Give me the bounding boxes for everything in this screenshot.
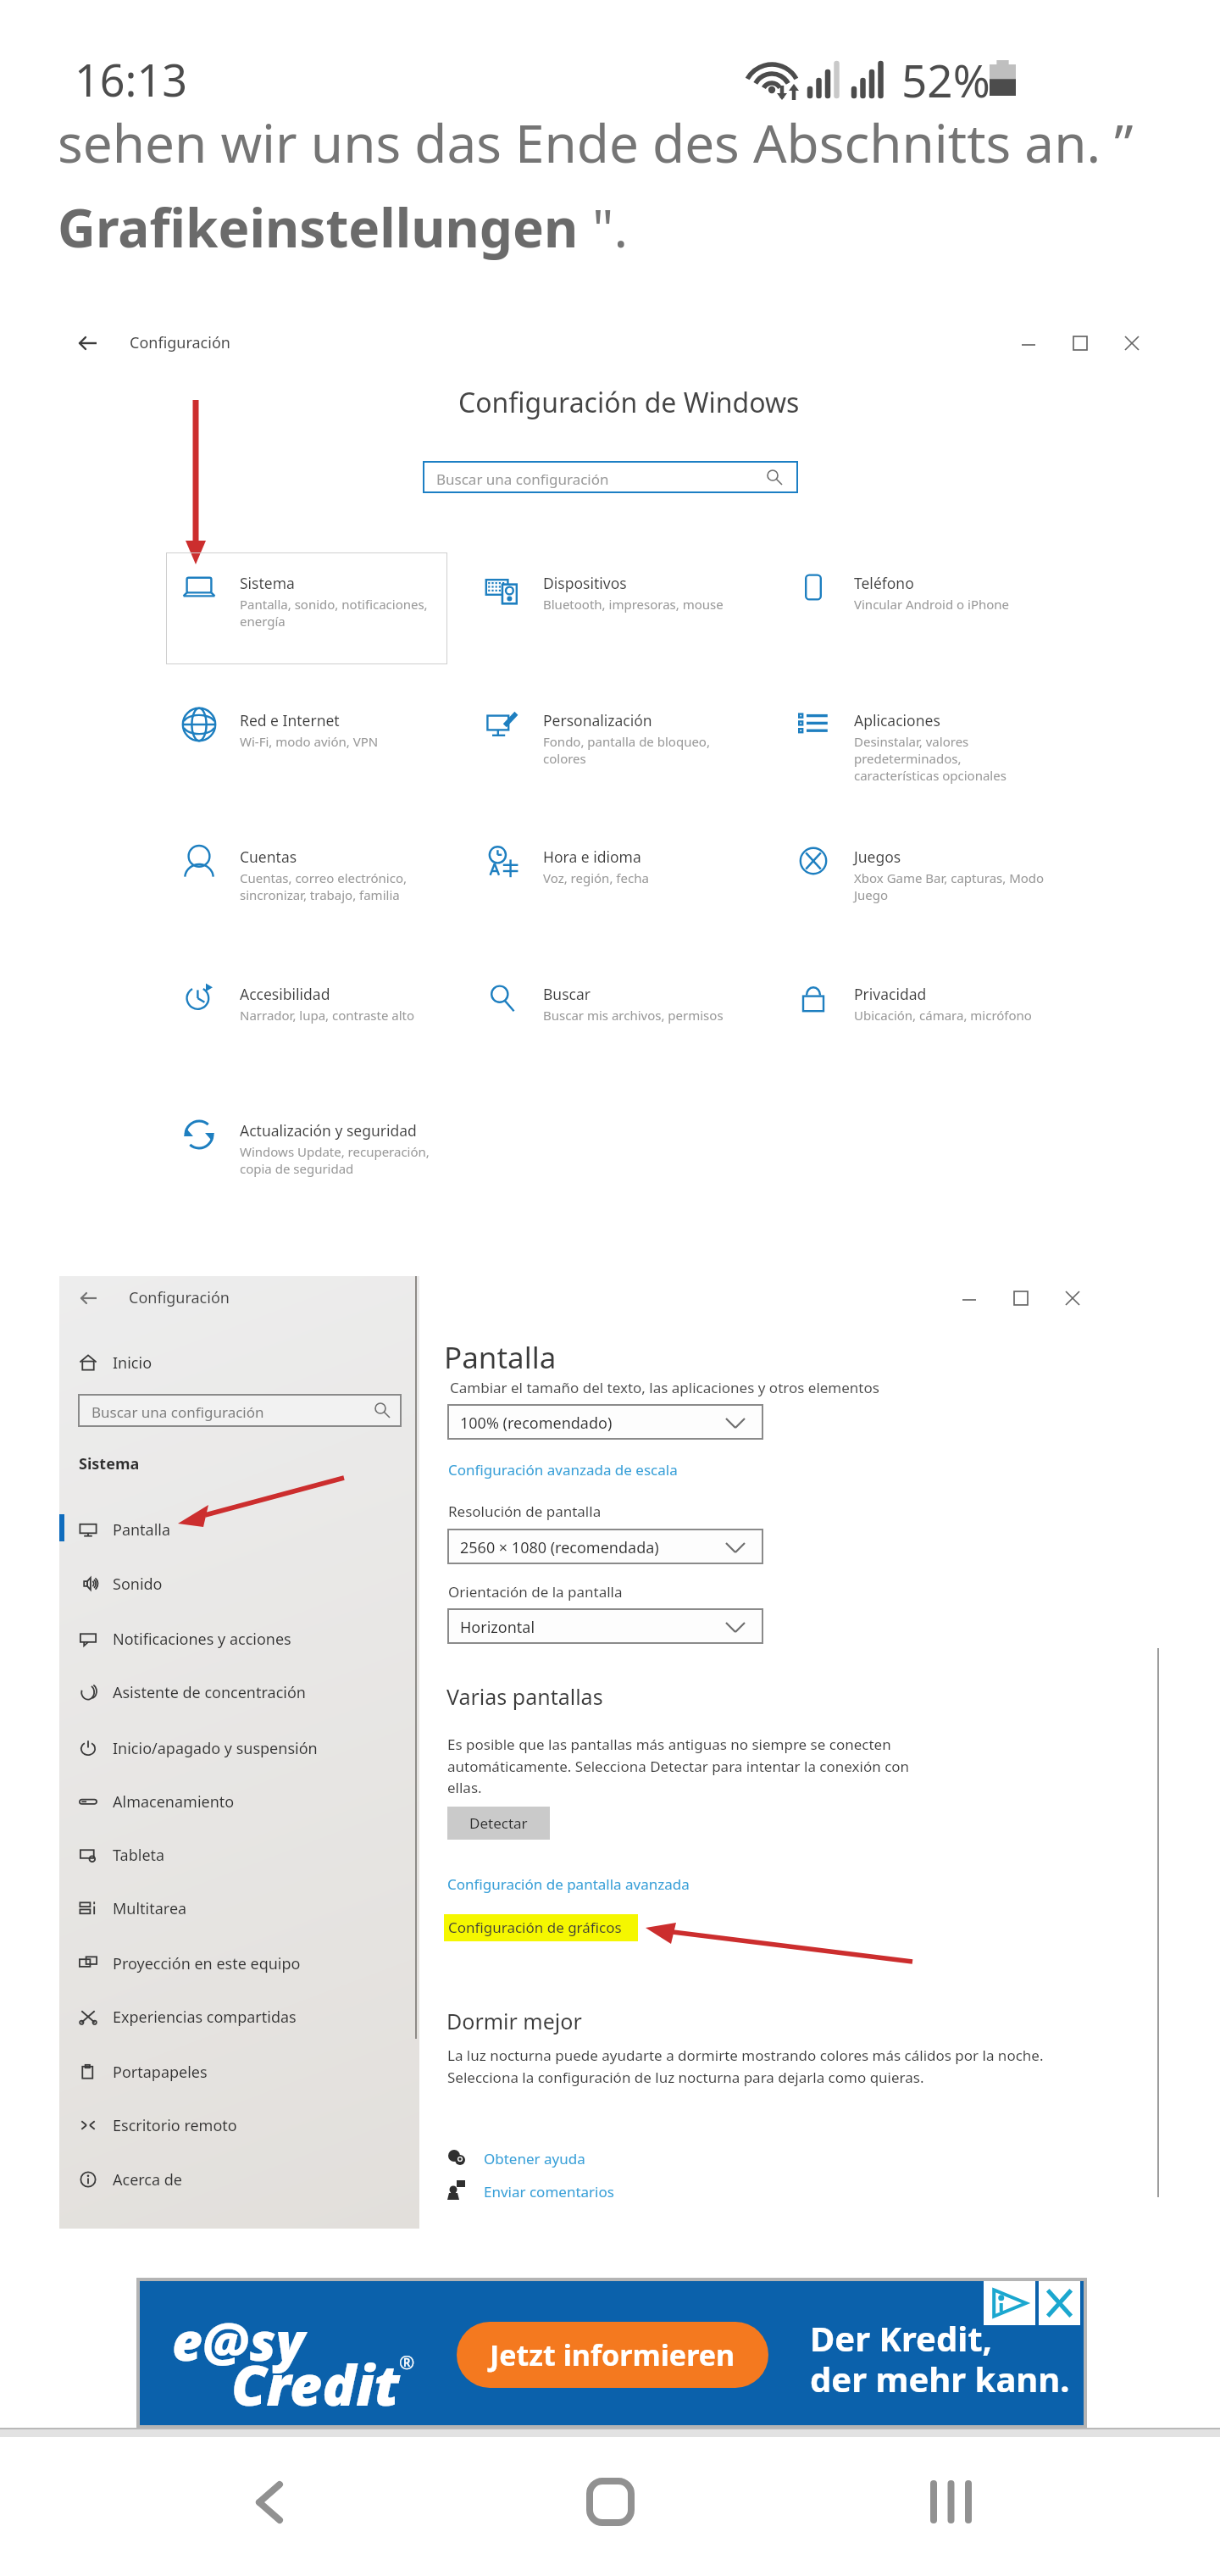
button[interactable]: Home (534, 2428, 686, 2576)
staticText: Acerca de (113, 2169, 183, 2190)
staticText: Dormir mejor (446, 2007, 582, 2035)
staticText: Xbox Game Bar, capturas, Modo Juego (854, 869, 1045, 903)
staticText: 16:13 (75, 49, 187, 109)
staticText: Portapapeles (113, 2062, 208, 2083)
button[interactable]: Buscar una configuración (78, 1394, 402, 1427)
staticText: Juegos (854, 847, 901, 867)
staticText: Es posible que las pantallas más antigua… (447, 1735, 910, 1797)
button[interactable]: Detectar (447, 1807, 550, 1840)
staticText: Red e Internet (240, 710, 340, 730)
staticText: Actualización y seguridad (240, 1120, 417, 1141)
staticText: Configuración de Windows (458, 384, 800, 421)
button[interactable]: 2560 × 1080 (recomendada) (447, 1529, 763, 1564)
staticText: Bluetooth, impresoras, mouse (543, 596, 724, 613)
button[interactable]: Juegos (796, 842, 1084, 899)
button[interactable]: Hora e idioma (485, 842, 774, 882)
staticText: Orientación de la pantalla (448, 1582, 623, 1602)
staticText: Experiencias compartidas (113, 2007, 297, 2028)
staticText: Der Kredit, (810, 2315, 992, 2361)
button[interactable]: Ad choices (984, 2281, 1035, 2325)
staticText: Sonido (113, 1574, 163, 1595)
staticText: Wi-Fi, modo avión, VPN (240, 733, 379, 750)
staticText: Buscar una configuración (436, 469, 609, 489)
button[interactable]: Personalización (485, 706, 774, 763)
button[interactable]: Teléfono (796, 569, 1084, 608)
button[interactable] (166, 552, 447, 664)
staticText: Notificaciones y acciones (113, 1629, 291, 1650)
staticText: Configuración (130, 332, 230, 353)
staticText: Vincular Android o iPhone (854, 596, 1010, 613)
staticText: Obtener ayuda (484, 2149, 585, 2168)
button[interactable]: Dispositivos (485, 569, 774, 608)
staticText: Inicio/apagado y suspensión (113, 1738, 318, 1759)
staticText: Fondo, pantalla de bloqueo, colores (543, 733, 710, 767)
staticText: ® (399, 2349, 415, 2374)
button[interactable]: Privacidad (796, 980, 1084, 1019)
staticText: Configuración de gráficos (448, 1918, 622, 1937)
staticText: Hora e idioma (543, 847, 641, 867)
button[interactable]: Escritorio remoto (59, 2107, 419, 2144)
staticText: Credit (231, 2346, 400, 2422)
button[interactable]: Proyección en este equipo (59, 1945, 419, 1982)
button[interactable]: Multitarea (59, 1890, 419, 1927)
button[interactable]: Almacenamiento (59, 1783, 419, 1820)
staticText: ". (579, 192, 629, 263)
staticText: Cambiar el tamaño del texto, las aplicac… (450, 1378, 879, 1397)
button[interactable]: Close ad (1039, 2281, 1080, 2325)
staticText: Aplicaciones (854, 710, 940, 730)
button[interactable]: Portapapeles (59, 2053, 419, 2090)
staticText: Grafikeinstellungen (58, 192, 579, 263)
staticText: Accesibilidad (240, 984, 330, 1004)
button[interactable]: Sonido (59, 1565, 419, 1602)
button[interactable] (444, 1914, 638, 1941)
staticText: Personalización (543, 710, 652, 730)
button[interactable]: Jetzt informieren (457, 2322, 768, 2388)
button[interactable]: Horizontal (447, 1608, 763, 1644)
staticText: Resolución de pantalla (448, 1502, 602, 1521)
staticText: Sistema (240, 573, 295, 593)
button[interactable]: Inicio (59, 1344, 419, 1381)
staticText: Desinstalar, valores predeterminados, ca… (854, 733, 1006, 784)
button[interactable]: Tableta (59, 1836, 419, 1874)
button[interactable]: Experiencias compartidas (59, 1998, 419, 2035)
staticText: Narrador, lupa, contraste alto (240, 1007, 415, 1024)
button[interactable]: Recent apps (874, 2428, 1027, 2576)
button[interactable]: Actualización y seguridad (182, 1116, 470, 1173)
button[interactable]: Pantalla (59, 1511, 419, 1548)
staticText: Horizontal (460, 1617, 535, 1638)
button[interactable]: Inicio/apagado y suspensión (59, 1729, 419, 1767)
staticText: der mehr kann. (810, 2356, 1070, 2401)
staticText: Cuentas, correo electrónico, sincronizar… (240, 869, 408, 903)
staticText: La luz nocturna puede ayudarte a dormirt… (447, 2046, 1044, 2087)
staticText: Asistente de concentración (113, 1682, 306, 1703)
staticText: Cuentas (240, 847, 297, 867)
staticText: Pantalla (444, 1337, 557, 1378)
button[interactable]: Acerca de (59, 2161, 419, 2198)
staticText: Inicio (113, 1352, 152, 1374)
button[interactable]: Notificaciones y acciones (59, 1620, 419, 1657)
button[interactable]: Sistema (182, 569, 470, 625)
button[interactable]: Asistente de concentración (59, 1674, 419, 1711)
staticText: Multitarea (113, 1898, 187, 1919)
staticText: Teléfono (854, 573, 914, 593)
button[interactable]: Buscar (485, 980, 774, 1019)
button[interactable]: Aplicaciones (796, 706, 1084, 780)
staticText: Sistema (79, 1453, 140, 1474)
button[interactable]: Cuentas (182, 842, 470, 899)
staticText: Buscar (543, 984, 591, 1004)
staticText: Buscar una configuración (91, 1402, 264, 1422)
staticText: Proyección en este equipo (113, 1953, 301, 1974)
staticText: Privacidad (854, 984, 927, 1004)
staticText: Ubicación, cámara, micrófono (854, 1007, 1032, 1024)
staticText: 100% (recomendado) (460, 1413, 613, 1434)
staticText: 2560 × 1080 (recomendada) (460, 1537, 659, 1558)
staticText: Varias pantallas (446, 1682, 603, 1711)
button[interactable]: 100% (recomendado) (447, 1404, 763, 1440)
staticText: Dispositivos (543, 573, 627, 593)
staticText: Voz, región, fecha (543, 869, 649, 886)
button[interactable]: Buscar una configuración (423, 461, 798, 493)
button[interactable]: Back (193, 2428, 346, 2576)
button[interactable]: Red e Internet (182, 706, 470, 746)
staticText: Enviar comentarios (484, 2182, 614, 2201)
button[interactable]: Accesibilidad (182, 980, 470, 1019)
